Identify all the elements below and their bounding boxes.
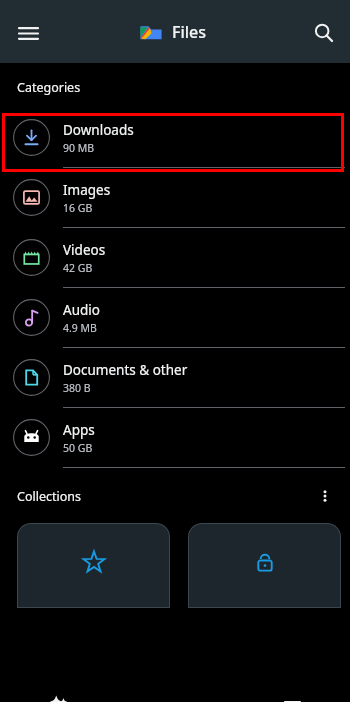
button[interactable]: Documents & other [0,348,350,408]
staticText: Categories [17,79,81,96]
button[interactable]: Videos [0,228,350,288]
button[interactable]: Audio [0,288,350,348]
button[interactable]: More options [312,483,338,509]
staticText: Files [172,21,207,43]
staticText: Collections [17,488,81,505]
button[interactable]: Open navigation menu [12,17,44,49]
button[interactable]: Images [0,168,350,228]
staticText: Apps [63,421,95,439]
staticText: Downloads [63,121,134,139]
staticText: Images [63,181,111,199]
staticText: Videos [63,241,106,259]
button[interactable]: Search [308,17,338,47]
staticText: 380 B [63,381,91,395]
button[interactable]: Favorites [17,523,170,608]
staticText: 4.9 MB [63,321,97,335]
staticText: 50 GB [63,441,93,455]
staticText: 16 GB [63,201,93,215]
button[interactable]: Apps [0,408,350,468]
button[interactable]: Safe folder [188,523,341,608]
button[interactable]: Downloads [0,108,350,168]
staticText: Documents & other [63,361,188,379]
staticText: 42 GB [63,261,93,275]
staticText: Audio [63,301,100,319]
staticText: 90 MB [63,141,95,155]
